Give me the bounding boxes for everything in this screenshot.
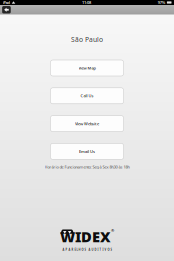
staticText: 97% [158,0,166,5]
staticText: Call Us [80,93,93,98]
button[interactable]: Email Us [50,143,123,159]
staticText: A P A R E L H O S A U D I T I V O S [62,248,111,251]
staticText: View Map [78,65,95,71]
staticText: ® [111,228,114,233]
staticText: WIDEX [60,227,111,246]
staticText: 11:08 [82,0,91,5]
button[interactable]: View Website [50,116,123,132]
button[interactable]: View Map [50,60,123,76]
staticText: São Paulo [71,35,103,44]
button[interactable]: Call Us [50,88,123,104]
staticText: Email Us [79,149,95,154]
staticText: iPad [2,0,10,5]
staticText: Horário de Funcionamento: Seg à Sex 8h30… [44,164,129,169]
button[interactable]: Back [1,5,12,14]
staticText: View Website [75,121,99,126]
